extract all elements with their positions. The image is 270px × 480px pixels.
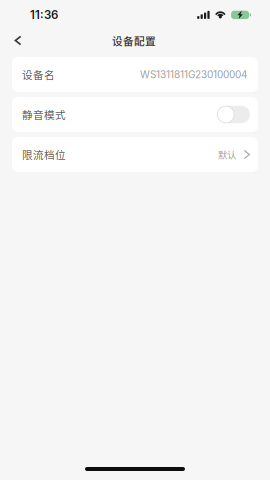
button[interactable]: 限流档位 xyxy=(12,137,258,172)
staticText: 11:36 xyxy=(30,8,58,22)
staticText: WS1311811G230100004 xyxy=(140,68,247,81)
staticText: 静音模式 xyxy=(22,107,66,122)
button[interactable]: 设备名 xyxy=(12,57,258,92)
button[interactable]: 返回 xyxy=(6,27,30,53)
button[interactable]: 静音模式 xyxy=(12,97,258,132)
staticText: 限流档位 xyxy=(22,147,66,162)
staticText: 设备名 xyxy=(22,67,55,82)
staticText: 默认 xyxy=(218,148,236,161)
staticText: 设备配置 xyxy=(112,33,156,48)
